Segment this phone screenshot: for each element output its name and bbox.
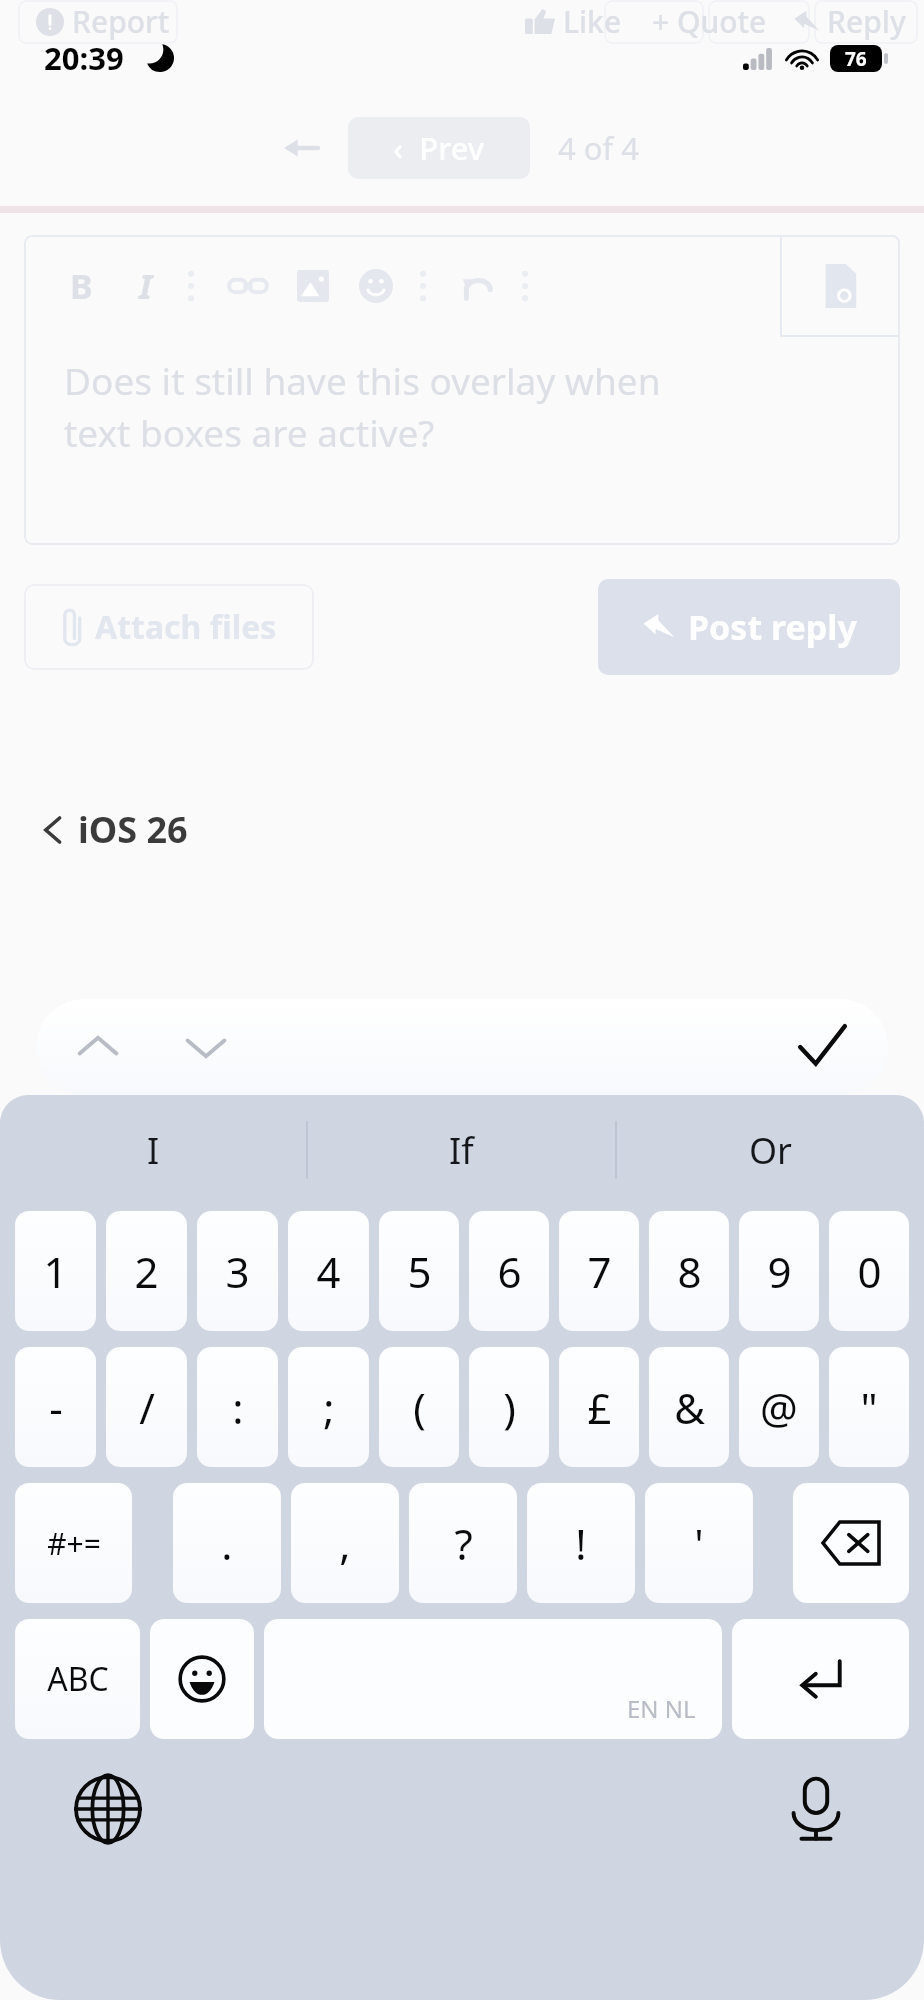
staticText: 9 [767, 1243, 792, 1300]
button[interactable]: Or [617, 1095, 924, 1205]
staticText: Post reply [688, 604, 857, 650]
staticText: @ [760, 1379, 798, 1436]
button[interactable]: 7 [559, 1211, 639, 1331]
staticText: + Quote [652, 1, 767, 42]
button[interactable]: £ [559, 1347, 639, 1467]
button[interactable]: , [291, 1483, 399, 1603]
staticText: Like [563, 1, 622, 42]
button[interactable] [604, 0, 704, 44]
staticText: If [449, 1126, 474, 1175]
staticText: . [221, 1515, 233, 1572]
button[interactable]: 4 [288, 1211, 369, 1331]
button[interactable]: Emoji [150, 1619, 254, 1739]
button[interactable]: : [197, 1347, 278, 1467]
button[interactable]: 8 [649, 1211, 729, 1331]
button[interactable]: I [0, 1095, 306, 1205]
button[interactable] [814, 0, 918, 44]
staticText: 6 [497, 1243, 522, 1300]
staticText: 4 [316, 1243, 341, 1300]
staticText: ABC [47, 1657, 109, 1701]
staticText: ( [413, 1379, 426, 1436]
button[interactable]: Backspace [793, 1483, 909, 1603]
staticText: / [139, 1379, 155, 1436]
staticText: 20:39 [44, 37, 124, 79]
staticText: 0 [857, 1243, 882, 1300]
staticText: I [139, 263, 153, 309]
staticText: EN NL [627, 1692, 696, 1725]
button[interactable]: ? [409, 1483, 517, 1603]
button[interactable]: @ [739, 1347, 819, 1467]
button[interactable]: ' [645, 1483, 753, 1603]
staticText: ) [503, 1379, 516, 1436]
button[interactable]: If [308, 1095, 615, 1205]
button[interactable]: 5 [379, 1211, 459, 1331]
button[interactable]: - [15, 1347, 96, 1467]
button[interactable]: 2 [106, 1211, 187, 1331]
staticText: : [232, 1379, 244, 1436]
staticText: 1 [43, 1243, 68, 1300]
button[interactable]: Next field [166, 1007, 246, 1087]
button[interactable]: 1 [15, 1211, 96, 1331]
staticText: iOS 26 [78, 805, 188, 854]
button[interactable] [18, 0, 178, 44]
button[interactable]: 6 [469, 1211, 549, 1331]
button[interactable]: Return [732, 1619, 909, 1739]
staticText: Does it still have this overlay when tex… [64, 355, 661, 458]
button[interactable]: #+= [15, 1483, 132, 1603]
staticText: ! [575, 1515, 587, 1572]
staticText: 3 [225, 1243, 250, 1300]
button[interactable]: ‹ Prev [348, 117, 530, 179]
button[interactable]: Previous field [58, 1007, 138, 1087]
staticText: ? [454, 1515, 473, 1572]
staticText: Report [72, 1, 170, 42]
staticText: - [49, 1379, 63, 1436]
staticText: 5 [407, 1243, 432, 1300]
button[interactable]: ! [527, 1483, 635, 1603]
button[interactable]: " [829, 1347, 909, 1467]
button[interactable]: ( [379, 1347, 459, 1467]
staticText: ' [694, 1515, 704, 1572]
button[interactable]: 0 [829, 1211, 909, 1331]
staticText: I [147, 1126, 160, 1175]
staticText: 76 [845, 46, 867, 72]
staticText: " [860, 1379, 878, 1436]
button[interactable]: ) [469, 1347, 549, 1467]
button[interactable]: 3 [197, 1211, 278, 1331]
staticText: , [339, 1515, 351, 1572]
staticText: & [674, 1379, 705, 1436]
staticText: £ [587, 1379, 612, 1436]
staticText: 7 [587, 1243, 612, 1300]
staticText: ‹ Prev [393, 127, 485, 169]
button[interactable]: Space [264, 1619, 722, 1739]
button[interactable]: ; [288, 1347, 369, 1467]
staticText: Attach files [95, 605, 277, 649]
button[interactable]: ABC [15, 1619, 140, 1739]
staticText: B [70, 263, 93, 309]
button[interactable]: 9 [739, 1211, 819, 1331]
button[interactable]: Voice input [768, 1761, 864, 1857]
button[interactable]: Change keyboard language [60, 1761, 156, 1857]
staticText: 2 [134, 1243, 159, 1300]
button[interactable]: & [649, 1347, 729, 1467]
button[interactable]: . [173, 1483, 281, 1603]
button[interactable]: Post reply [598, 579, 900, 675]
staticText: 4 of 4 [558, 127, 640, 169]
button[interactable]: Attach files [24, 584, 314, 670]
staticText: ; [323, 1379, 335, 1436]
button[interactable]: / [106, 1347, 187, 1467]
button[interactable] [708, 0, 810, 44]
staticText: 8 [677, 1243, 702, 1300]
button[interactable]: Done [780, 1005, 864, 1089]
staticText: Reply [827, 1, 906, 42]
staticText: Or [749, 1126, 792, 1175]
staticText: #+= [47, 1523, 101, 1564]
